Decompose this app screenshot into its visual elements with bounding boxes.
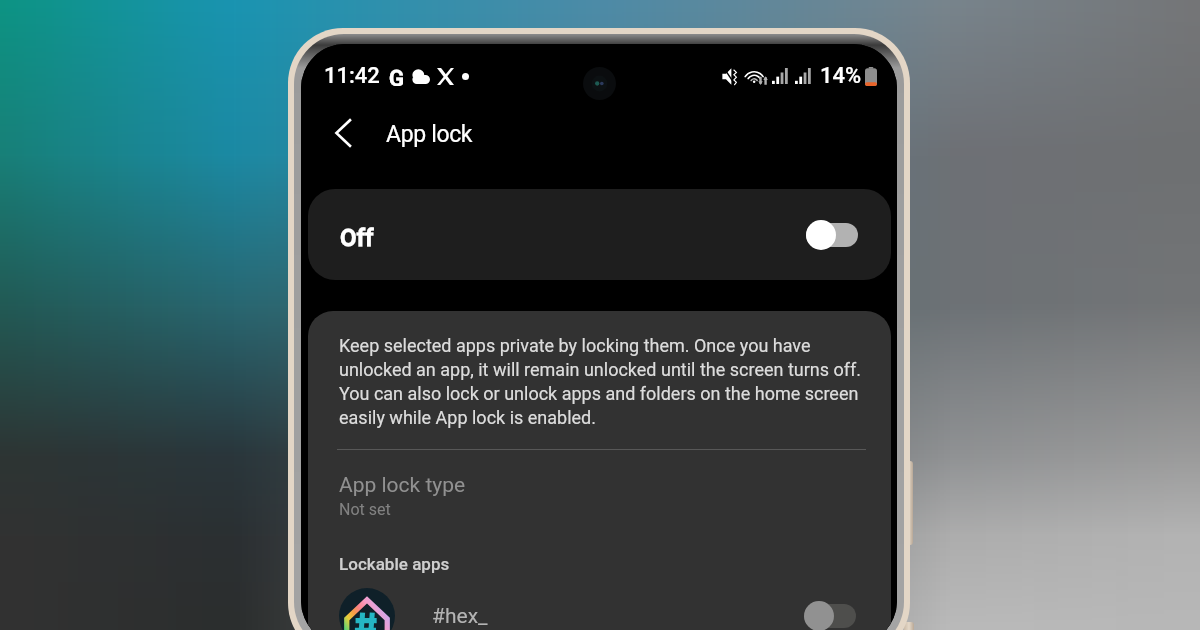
staticText: G — [389, 66, 404, 86]
button[interactable]: Navigate up — [319, 109, 367, 157]
staticText: Not set — [339, 500, 391, 519]
staticText: 14% — [820, 63, 862, 89]
button[interactable]: Off — [308, 189, 891, 280]
staticText: Keep selected apps private by locking th… — [339, 335, 877, 428]
staticText: App lock — [386, 121, 473, 148]
staticText: App lock type — [339, 473, 466, 498]
staticText: Lockable apps — [339, 554, 450, 574]
staticText: #hex_ — [432, 604, 488, 629]
staticText: 11:42 — [324, 63, 380, 89]
button[interactable]: #hex_ — [308, 588, 891, 630]
staticText: Off — [340, 224, 374, 252]
button[interactable]: App lock type — [308, 473, 891, 519]
